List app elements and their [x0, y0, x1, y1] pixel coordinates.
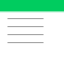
button[interactable]	[0, 27, 64, 35]
button[interactable]	[0, 11, 64, 19]
button[interactable]	[0, 43, 64, 51]
button[interactable]	[0, 19, 64, 27]
button[interactable]	[0, 35, 64, 43]
